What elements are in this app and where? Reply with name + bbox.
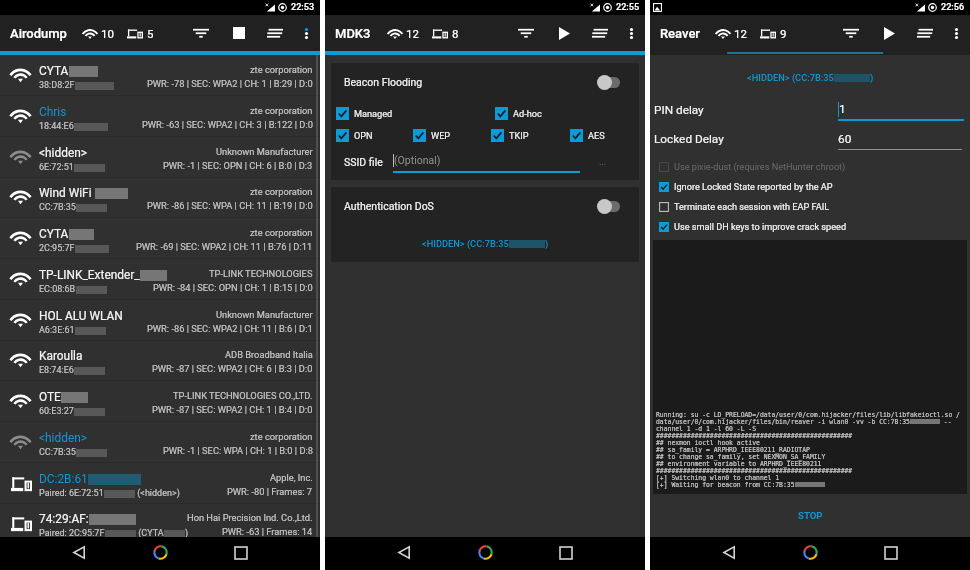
staticText: Terminate each session with EAP FAIL xyxy=(674,202,830,213)
staticText: MDK3 xyxy=(335,26,371,41)
button[interactable]: OPN xyxy=(336,129,373,142)
staticText: 5 xyxy=(147,27,154,40)
staticText: CC:7B:35 xyxy=(39,447,76,458)
staticText: 18:44:E6 xyxy=(39,121,74,132)
button[interactable]: HOL ALU WLAN xyxy=(0,300,320,340)
button[interactable]: Sort xyxy=(582,15,618,51)
button[interactable]: Recent apps xyxy=(224,536,258,569)
staticText: zte corporation xyxy=(250,431,313,442)
staticText: OTE xyxy=(39,390,61,404)
button[interactable]: Chris xyxy=(0,96,320,136)
staticText: CYTA xyxy=(39,227,69,241)
button[interactable]: Karoulla xyxy=(0,340,320,380)
button[interactable]: Recent apps xyxy=(549,536,583,569)
button[interactable]: More options xyxy=(942,15,970,51)
button[interactable]: Start or stop xyxy=(221,15,257,51)
button[interactable]: Home xyxy=(793,536,827,569)
staticText: Use pixie-dust (requires NetHunter chroo… xyxy=(674,162,846,173)
button[interactable]: STOP xyxy=(650,494,970,537)
staticText: TKIP xyxy=(509,130,529,141)
button[interactable]: Managed xyxy=(336,107,393,120)
button[interactable]: Recent apps xyxy=(874,536,908,569)
button[interactable]: OTE xyxy=(0,381,320,421)
staticText: zte corporation xyxy=(250,186,313,197)
button[interactable]: Back xyxy=(387,536,421,569)
staticText: <hidden> xyxy=(39,431,87,445)
staticText: ## to change sa_family, set NEXMON_SA_FA… xyxy=(656,453,826,460)
staticText: Apple, Inc. xyxy=(270,472,313,483)
button[interactable]: CYTA xyxy=(0,55,320,95)
button[interactable]: Sort xyxy=(907,15,943,51)
staticText: PWR: -84 | SEC: OPN | CH: 1 | B:15 | D:0 xyxy=(153,282,313,293)
staticText: ########################################… xyxy=(656,467,853,474)
button[interactable]: Toggle xyxy=(597,199,620,214)
staticText: (CYTA xyxy=(136,528,164,539)
staticText: PWR: -63 | SEC: WPA2 | CH: 3 | B:122 | D… xyxy=(142,119,313,130)
staticText: Ad-hoc xyxy=(513,108,542,119)
staticText: 10 xyxy=(101,27,114,40)
staticText: PWR: -86 | SEC: WPA | CH: 11 | B:19 | D:… xyxy=(147,200,313,211)
staticText: PWR: -87 | SEC: WPA2 | CH: 6 | B:3 | D:0 xyxy=(152,363,313,374)
staticText: Karoulla xyxy=(39,349,83,363)
button[interactable]: WEP xyxy=(413,129,451,142)
staticText: <HIDDEN> (CC:7B:35 xyxy=(747,72,834,83)
button[interactable]: Filter xyxy=(508,15,544,51)
button[interactable]: Use pixie-dust (requires NetHunter chroo… xyxy=(659,157,846,177)
button[interactable]: <hidden> xyxy=(0,422,320,462)
staticText: 1 xyxy=(839,102,846,116)
staticText: zte corporation xyxy=(250,105,313,116)
staticText: [+] Switching wlan0 to channel 1 xyxy=(656,474,780,481)
staticText: 2C:95:7F xyxy=(39,243,75,254)
staticText: data/user/0/com.hijacker/files/bin/reave… xyxy=(656,418,910,425)
button[interactable]: AES xyxy=(570,129,605,142)
staticText: ## nexmon ioctl hook active xyxy=(656,439,760,446)
staticText: Managed xyxy=(354,108,393,119)
button[interactable]: DC:2B:61 xyxy=(0,463,320,503)
button[interactable]: Home xyxy=(468,536,502,569)
button[interactable]: Start or stop xyxy=(871,15,907,51)
staticText: PWR: -87 | SEC: WPA2 | CH: 1 | B:4 | D:0 xyxy=(152,404,313,415)
button[interactable]: Home xyxy=(143,536,177,569)
staticText: ) xyxy=(185,528,189,539)
staticText: Use small DH keys to improve crack speed xyxy=(674,222,847,233)
staticText: HOL ALU WLAN xyxy=(39,309,123,323)
button[interactable]: CYTA xyxy=(0,218,320,258)
staticText: Ignore Locked State reported by the AP xyxy=(674,182,833,193)
staticText: 22:56 xyxy=(941,2,965,13)
button[interactable]: Sort xyxy=(257,15,293,51)
staticText: PWR: -69 | SEC: WPA2 | CH: 11 | B:76 | D… xyxy=(136,241,313,252)
staticText: OPN xyxy=(354,130,373,141)
staticText: Running: su -c LD_PRELOAD=/data/user/0/c… xyxy=(656,411,960,418)
button[interactable]: Filter xyxy=(833,15,869,51)
staticText: ADB Broadband Italia xyxy=(225,349,313,360)
button[interactable]: Ignore Locked State reported by the AP xyxy=(659,177,833,197)
staticText: SSID file xyxy=(344,156,383,168)
button[interactable]: Start or stop xyxy=(546,15,582,51)
staticText: E8:74:E6 xyxy=(39,365,74,376)
staticText: 22:55 xyxy=(616,2,640,13)
staticText: ) xyxy=(870,72,874,83)
button[interactable]: Back xyxy=(712,536,746,569)
button[interactable]: <hidden> xyxy=(0,137,320,177)
button[interactable]: Filter xyxy=(183,15,219,51)
button[interactable]: More options xyxy=(292,15,320,51)
staticText: Beacon Flooding xyxy=(344,76,423,88)
button[interactable]: TKIP xyxy=(491,129,529,142)
button[interactable]: TP-LINK_Extender_ xyxy=(0,259,320,299)
staticText: PWR: -1 | SEC: WPA | CH: 1 | B:0 | D:8 xyxy=(163,445,313,456)
button[interactable]: Use small DH keys to improve crack speed xyxy=(659,217,847,237)
button[interactable]: Wind WiFi xyxy=(0,177,320,217)
staticText: 38:D8:2F xyxy=(39,80,75,91)
staticText: Airodump xyxy=(10,26,67,41)
button[interactable]: Ad-hoc xyxy=(495,107,542,120)
staticText: 9 xyxy=(780,27,787,40)
staticText: Reaver xyxy=(660,26,700,41)
button[interactable]: Toggle xyxy=(597,75,620,90)
button[interactable]: More options xyxy=(617,15,645,51)
button[interactable]: 74:29:AF: xyxy=(0,503,320,543)
staticText: 12 xyxy=(734,27,747,40)
button[interactable]: Terminate each session with EAP FAIL xyxy=(659,197,830,217)
staticText: ... xyxy=(599,157,607,168)
button[interactable]: Back xyxy=(62,536,96,569)
staticText: Hon Hai Precision Ind. Co.,Ltd. xyxy=(187,512,313,523)
